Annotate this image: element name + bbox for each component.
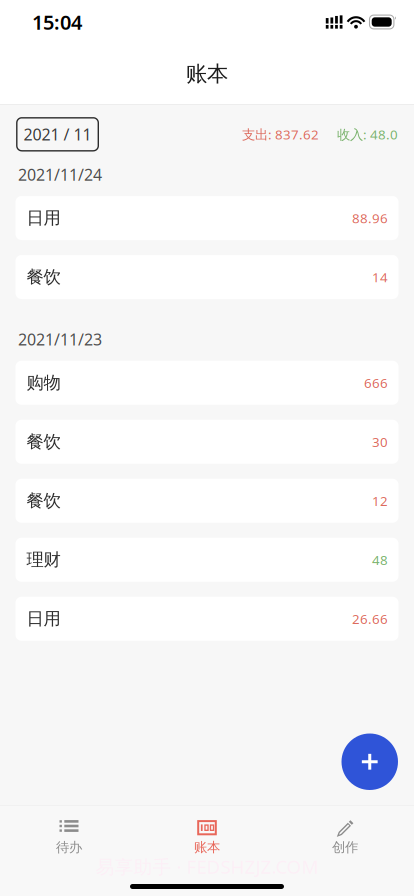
button[interactable]: 账本 <box>138 806 276 855</box>
button[interactable]: 日用 <box>15 597 398 641</box>
button[interactable]: 餐饮 <box>15 420 398 464</box>
button[interactable]: 日用 <box>15 196 398 240</box>
staticText: 餐饮 <box>26 490 60 511</box>
button[interactable]: 待办 <box>0 806 138 855</box>
staticText: 15:04 <box>32 9 82 35</box>
staticText: 待办 <box>56 839 82 855</box>
button[interactable]: 购物 <box>15 361 398 405</box>
staticText: 2021/11/24 <box>18 164 102 185</box>
button[interactable]: 理财 <box>15 538 398 582</box>
staticText: 购物 <box>26 372 60 393</box>
staticText: 餐饮 <box>26 266 60 288</box>
staticText: 30 <box>372 433 388 451</box>
staticText: 创作 <box>332 839 358 855</box>
staticText: 26.66 <box>352 610 388 628</box>
staticText: 日用 <box>26 608 60 629</box>
button[interactable]: 2021 / 11 <box>17 118 98 151</box>
staticText: 账本 <box>194 839 220 855</box>
button[interactable]: 餐饮 <box>15 255 398 299</box>
button[interactable]: 餐饮 <box>15 479 398 523</box>
staticText: 14 <box>372 268 388 286</box>
button[interactable]: 创作 <box>276 806 414 855</box>
staticText: 666 <box>364 374 388 392</box>
staticText: 餐饮 <box>26 431 60 452</box>
staticText: 48 <box>372 551 388 569</box>
staticText: 日用 <box>26 207 60 229</box>
staticText: 账本 <box>186 61 228 87</box>
staticText: 支出: 837.62 <box>242 125 319 143</box>
button[interactable]: Add entry <box>341 733 398 790</box>
staticText: 88.96 <box>352 209 388 227</box>
staticText: 2021/11/23 <box>18 328 102 350</box>
staticText: 2021 / 11 <box>24 124 92 145</box>
staticText: 12 <box>372 492 388 510</box>
staticText: 理财 <box>26 549 60 570</box>
staticText: 收入: 48.0 <box>337 125 398 143</box>
